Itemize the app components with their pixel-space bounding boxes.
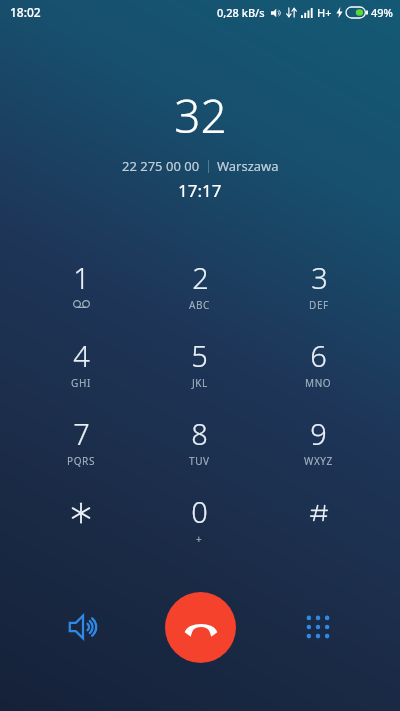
button[interactable]: 6 <box>259 336 378 396</box>
staticText: TUV <box>189 454 210 468</box>
staticText: MNO <box>305 376 332 390</box>
staticText: 1 <box>73 258 90 297</box>
staticText: 5 <box>191 336 208 375</box>
staticText: 2 <box>192 258 209 297</box>
button[interactable] <box>22 492 140 552</box>
button[interactable]: 5 <box>140 336 259 396</box>
button[interactable]: 8 <box>140 414 259 474</box>
staticText: WXYZ <box>304 454 333 468</box>
staticText: 17:17 <box>178 179 222 202</box>
staticText: + <box>196 532 203 546</box>
staticText: Warszawa <box>217 157 279 175</box>
staticText: 6 <box>310 336 327 375</box>
button[interactable]: 4 <box>22 336 140 396</box>
staticText: 18:02 <box>10 4 41 20</box>
button[interactable]: 2 <box>140 258 259 318</box>
button[interactable] <box>259 492 378 552</box>
button[interactable]: Dialpad <box>259 588 376 666</box>
staticText: ABC <box>189 298 211 312</box>
staticText: 32 <box>174 84 227 147</box>
staticText: GHI <box>71 376 91 390</box>
staticText: 49% <box>371 5 393 20</box>
staticText: 3 <box>311 258 328 297</box>
button[interactable]: Speaker <box>24 588 142 666</box>
button[interactable]: 0 <box>140 492 259 552</box>
staticText: H+ <box>317 5 332 20</box>
button[interactable]: 9 <box>259 414 378 474</box>
staticText: 7 <box>73 414 90 453</box>
staticText: 0 <box>191 492 208 531</box>
button[interactable]: End call <box>165 592 236 663</box>
button[interactable]: 7 <box>22 414 140 474</box>
staticText: 22 275 00 00 <box>122 157 200 175</box>
staticText: 0,28 kB/s <box>217 5 265 20</box>
staticText: 4 <box>73 336 90 375</box>
staticText: DEF <box>309 298 329 312</box>
button[interactable]: 1 <box>22 258 140 318</box>
button[interactable]: 3 <box>259 258 378 318</box>
staticText: JKL <box>192 376 208 390</box>
staticText: 8 <box>191 414 208 453</box>
staticText: 9 <box>310 414 327 453</box>
staticText: PQRS <box>67 454 95 468</box>
